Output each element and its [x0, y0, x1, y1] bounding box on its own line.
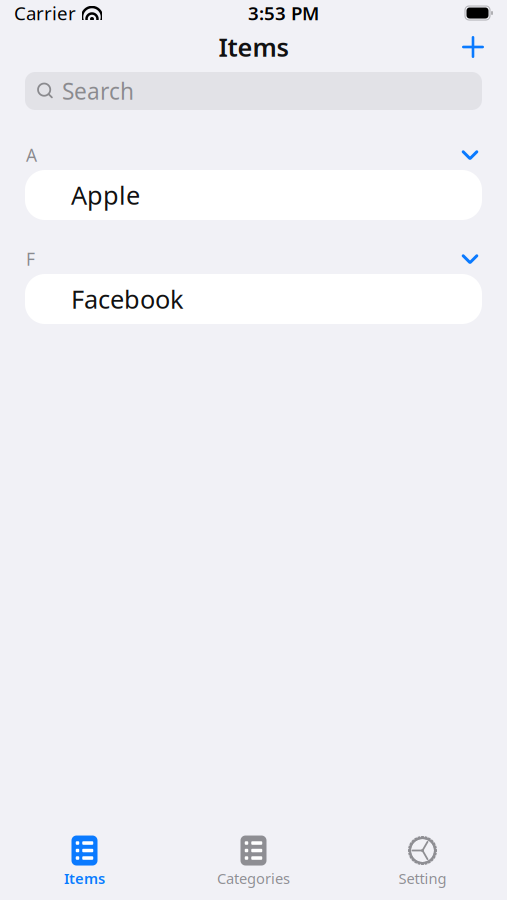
staticText: Items	[64, 868, 105, 888]
staticText: Carrier	[14, 1, 76, 25]
button[interactable]: F	[0, 244, 507, 274]
button[interactable]: Setting	[338, 829, 507, 892]
staticText: F	[26, 247, 35, 270]
button[interactable]: Items	[0, 829, 169, 892]
button[interactable]: Apple	[0, 170, 507, 220]
button[interactable]: A	[0, 140, 507, 170]
button[interactable]: Categories	[169, 829, 338, 892]
staticText: Facebook	[71, 282, 184, 316]
button[interactable]: Search	[0, 72, 507, 110]
staticText: Apple	[71, 178, 140, 212]
staticText: Search	[62, 76, 134, 106]
staticText: 3:53 PM	[248, 1, 319, 25]
button[interactable]: Facebook	[0, 274, 507, 324]
button[interactable]: Add item	[451, 27, 495, 67]
staticText: Items	[218, 30, 288, 64]
staticText: Setting	[398, 868, 446, 888]
staticText: A	[26, 143, 37, 166]
staticText: Categories	[217, 868, 290, 888]
